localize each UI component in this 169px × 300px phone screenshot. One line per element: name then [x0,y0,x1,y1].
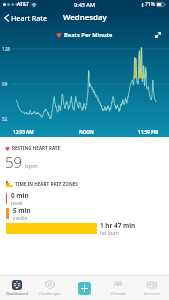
staticText: peak [11,200,23,206]
staticText: 11:59 PM [138,129,159,135]
staticText: AT&T [17,1,29,8]
staticText: 5 min [13,206,31,215]
staticText: Challenges [39,291,61,297]
staticText: 71% [145,1,155,8]
staticText: Account [144,291,160,297]
staticText: NOON [79,129,94,135]
button[interactable]: 0 min [0,191,169,206]
staticText: Beats Per Minute [64,31,113,39]
staticText: 1 hr 47 min [100,221,136,230]
staticText: TIME IN HEART RATE ZONES [15,181,78,187]
staticText: Heart Rate [11,13,47,23]
staticText: 9:43 AM [74,1,96,8]
button[interactable]: Heart Rate [0,10,53,26]
staticText: 59 [5,152,23,172]
button[interactable]: 1 hr 47 min [0,221,169,236]
staticText: 90 [2,81,8,87]
staticText: 52 [2,116,8,122]
button[interactable]: Challenges [33,276,67,300]
button[interactable]: RESTING HEART RATE [0,137,169,173]
button[interactable]: 5 min [0,206,169,221]
staticText: Dashboard [6,291,28,297]
staticText: bpm [25,162,38,170]
staticText: Wednesday [63,12,107,23]
staticText: Friends [111,291,126,297]
staticText: 128 [2,46,10,52]
button[interactable]: Dashboard [0,276,33,300]
staticText: cardio [13,215,28,221]
staticText: 0 min [11,191,29,200]
button[interactable]: Expand chart [153,30,162,39]
button[interactable]: Add [78,282,91,295]
button[interactable]: Friends [101,276,135,300]
staticText: RESTING HEART RATE [12,145,61,151]
staticText: 12:00 AM [13,129,34,135]
button[interactable]: Account [135,276,169,300]
staticText: fat burn [100,230,119,236]
